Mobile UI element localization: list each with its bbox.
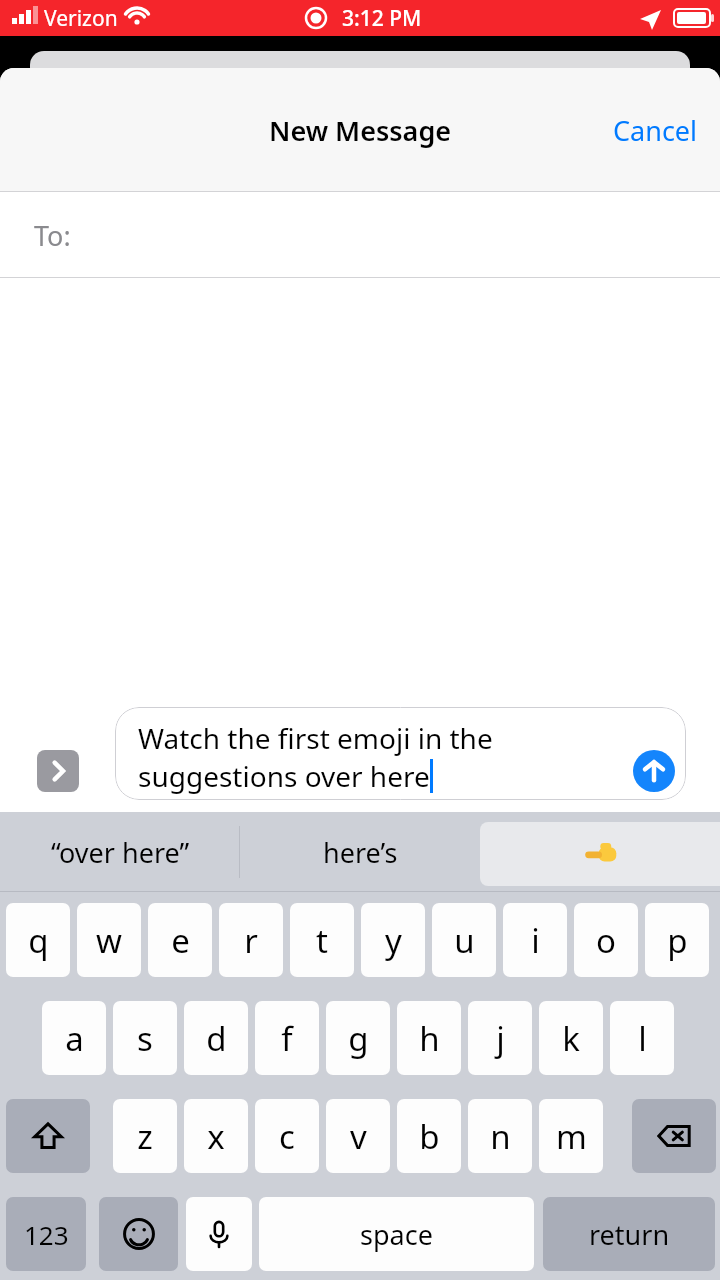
staticText: Cancel	[613, 112, 698, 149]
button[interactable]: Cancel	[601, 104, 710, 157]
button[interactable]: g	[326, 1001, 390, 1075]
button[interactable]: q	[6, 903, 70, 977]
staticText: l	[638, 1016, 647, 1061]
button[interactable]: a	[42, 1001, 106, 1075]
button[interactable]: Backspace	[632, 1099, 716, 1173]
staticText: e	[171, 918, 190, 963]
button[interactable]: x	[184, 1099, 248, 1173]
button[interactable]: here’s	[240, 812, 480, 892]
staticText: d	[206, 1016, 227, 1061]
staticText: s	[137, 1016, 153, 1061]
staticText: New Message	[269, 112, 452, 149]
button[interactable]: e	[148, 903, 212, 977]
staticText: here’s	[323, 834, 398, 871]
staticText: o	[596, 918, 616, 963]
staticText: 123	[24, 1217, 69, 1252]
staticText: Watch the first emoji in the	[138, 719, 493, 757]
button[interactable]: o	[574, 903, 638, 977]
button[interactable]: Emoji keyboard	[99, 1197, 178, 1271]
button[interactable]: f	[255, 1001, 319, 1075]
button[interactable]: Dictate	[186, 1197, 252, 1271]
button[interactable]: Send	[633, 750, 675, 792]
staticText: “over here”	[51, 834, 190, 871]
staticText: space	[360, 1216, 433, 1253]
staticText: u	[454, 918, 475, 963]
button[interactable]: Pointing hand emoji	[480, 822, 720, 886]
button[interactable]: k	[539, 1001, 603, 1075]
staticText: y	[385, 918, 402, 963]
button[interactable]: r	[219, 903, 283, 977]
button[interactable]: v	[326, 1099, 390, 1173]
staticText: g	[348, 1016, 369, 1061]
button[interactable]: m	[539, 1099, 603, 1173]
staticText: q	[28, 918, 49, 963]
staticText: f	[281, 1016, 293, 1061]
staticText: c	[279, 1114, 295, 1159]
button[interactable]: Shift	[6, 1099, 90, 1173]
staticText: 3:12 PM	[342, 4, 422, 33]
button[interactable]: n	[468, 1099, 532, 1173]
staticText: a	[65, 1016, 84, 1061]
staticText: return	[589, 1216, 670, 1253]
button[interactable]: 123	[6, 1197, 86, 1271]
button[interactable]: Watch the first emoji in the	[115, 707, 686, 800]
button[interactable]: Show apps	[37, 750, 79, 792]
staticText: m	[556, 1114, 587, 1159]
staticText: b	[419, 1114, 440, 1159]
staticText: k	[562, 1016, 580, 1061]
staticText: i	[531, 918, 540, 963]
button[interactable]: y	[361, 903, 425, 977]
staticText: suggestions over here	[138, 757, 430, 795]
button[interactable]: t	[290, 903, 354, 977]
button[interactable]: d	[184, 1001, 248, 1075]
button[interactable]: space	[259, 1197, 534, 1271]
button[interactable]: l	[610, 1001, 674, 1075]
staticText: p	[667, 918, 688, 963]
button[interactable]: i	[503, 903, 567, 977]
staticText: w	[96, 918, 122, 963]
staticText: t	[316, 918, 328, 963]
staticText: To:	[34, 217, 71, 254]
button[interactable]: c	[255, 1099, 319, 1173]
button[interactable]: “over here”	[0, 812, 240, 892]
staticText: v	[350, 1114, 367, 1159]
staticText: r	[244, 918, 258, 963]
button[interactable]: b	[397, 1099, 461, 1173]
button[interactable]: p	[645, 903, 709, 977]
staticText: z	[137, 1114, 153, 1159]
staticText: h	[419, 1016, 440, 1061]
button[interactable]: s	[113, 1001, 177, 1075]
staticText: j	[496, 1016, 505, 1061]
button[interactable]: h	[397, 1001, 461, 1075]
button[interactable]: j	[468, 1001, 532, 1075]
button[interactable]: w	[77, 903, 141, 977]
staticText: n	[490, 1114, 511, 1159]
staticText: Verizon	[44, 4, 118, 33]
button[interactable]: z	[113, 1099, 177, 1173]
button[interactable]: return	[543, 1197, 715, 1271]
staticText: x	[207, 1114, 225, 1159]
button[interactable]: To:	[0, 192, 720, 278]
button[interactable]: u	[432, 903, 496, 977]
